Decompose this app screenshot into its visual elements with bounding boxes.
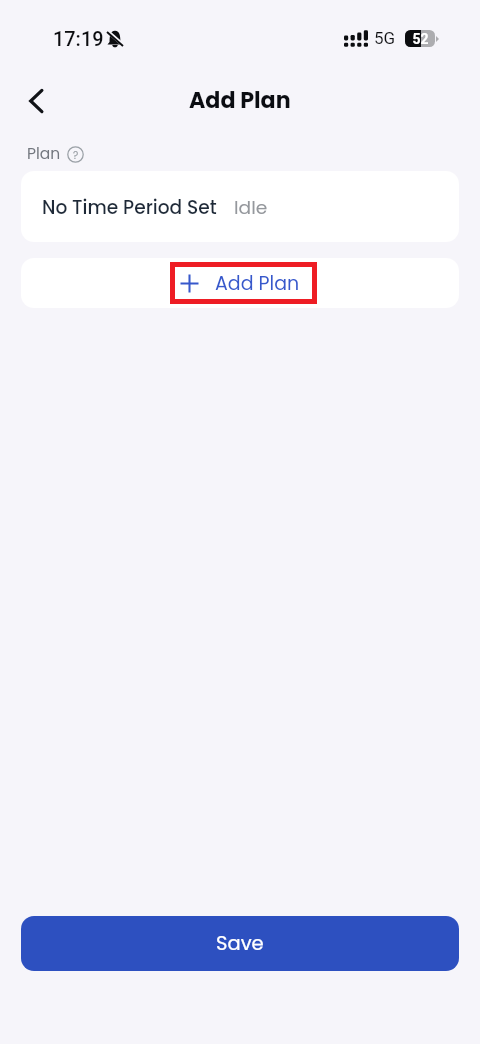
staticText: 5G xyxy=(374,28,396,48)
staticText: 52 xyxy=(412,31,429,47)
staticText: Idle xyxy=(234,194,268,220)
staticText: No Time Period Set xyxy=(42,194,217,220)
button[interactable]: No Time Period Set xyxy=(21,171,459,242)
staticText: Plan xyxy=(27,143,61,165)
staticText: Add Plan xyxy=(215,270,300,297)
staticText: Save xyxy=(216,930,264,957)
button[interactable]: Save xyxy=(21,916,459,971)
staticText: Add Plan xyxy=(189,85,291,116)
staticText: 17:19 xyxy=(53,28,104,51)
button[interactable]: Back xyxy=(14,79,58,123)
button[interactable]: Help xyxy=(67,146,84,163)
button[interactable]: Add Plan xyxy=(21,258,459,308)
staticText: ? xyxy=(73,148,79,162)
